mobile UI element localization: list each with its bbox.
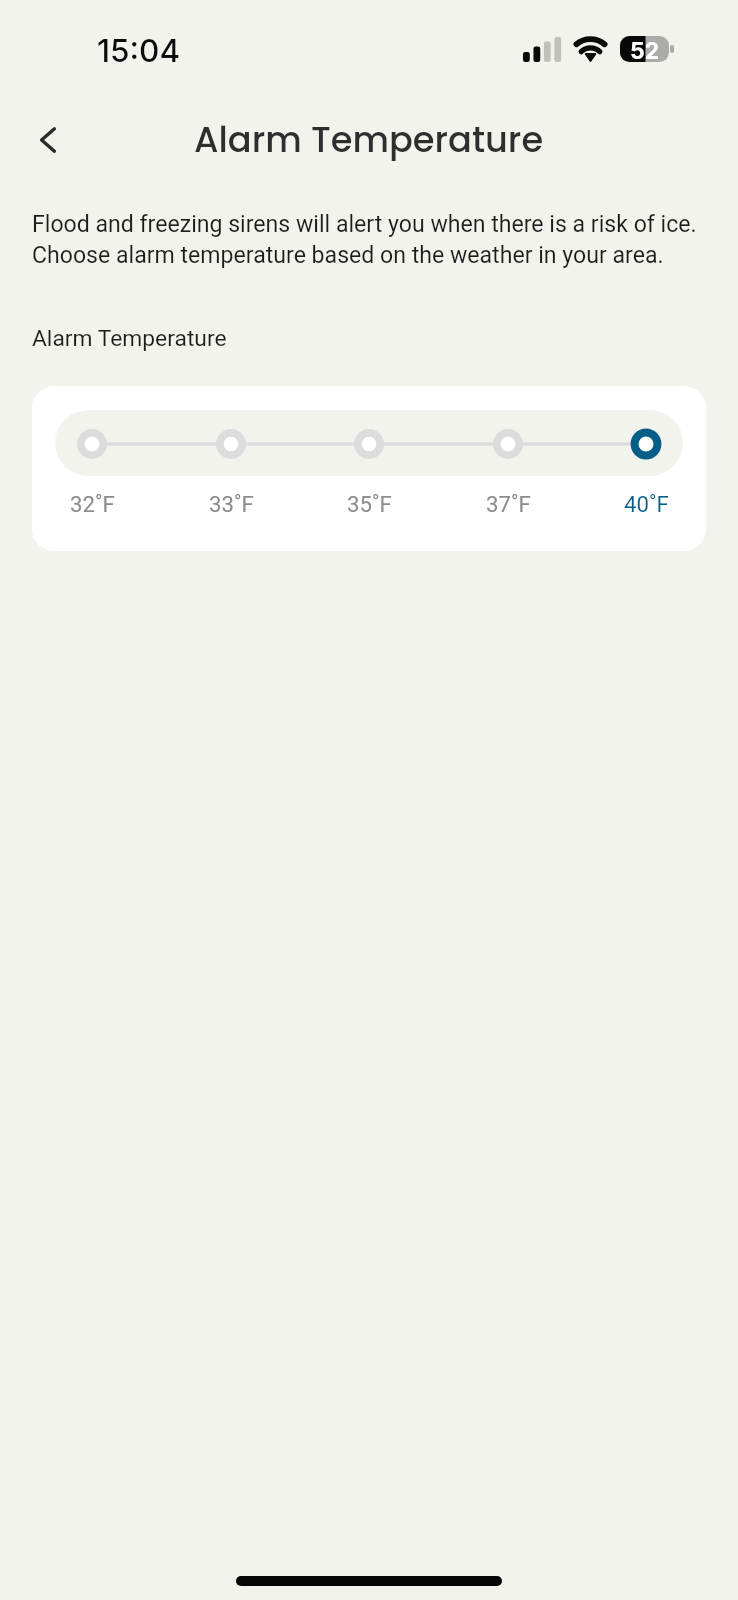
button[interactable]: Back xyxy=(16,108,79,171)
button[interactable]: 37°F xyxy=(463,410,553,524)
staticText: 40°F xyxy=(624,490,669,518)
button[interactable]: 40°F xyxy=(601,410,691,524)
staticText: 37°F xyxy=(486,490,531,518)
staticText: 15:04 xyxy=(97,31,181,69)
button[interactable]: 35°F xyxy=(324,410,414,524)
button[interactable]: 33°F xyxy=(186,410,276,524)
staticText: Alarm Temperature xyxy=(194,115,544,164)
button[interactable]: 32°F xyxy=(47,410,137,524)
staticText: 52 xyxy=(630,37,660,63)
staticText: Alarm Temperature xyxy=(32,325,227,352)
staticText: Flood and freezing sirens will alert you… xyxy=(32,211,732,268)
staticText: 33°F xyxy=(209,490,254,518)
staticText: 32°F xyxy=(70,490,115,518)
staticText: 35°F xyxy=(347,490,392,518)
